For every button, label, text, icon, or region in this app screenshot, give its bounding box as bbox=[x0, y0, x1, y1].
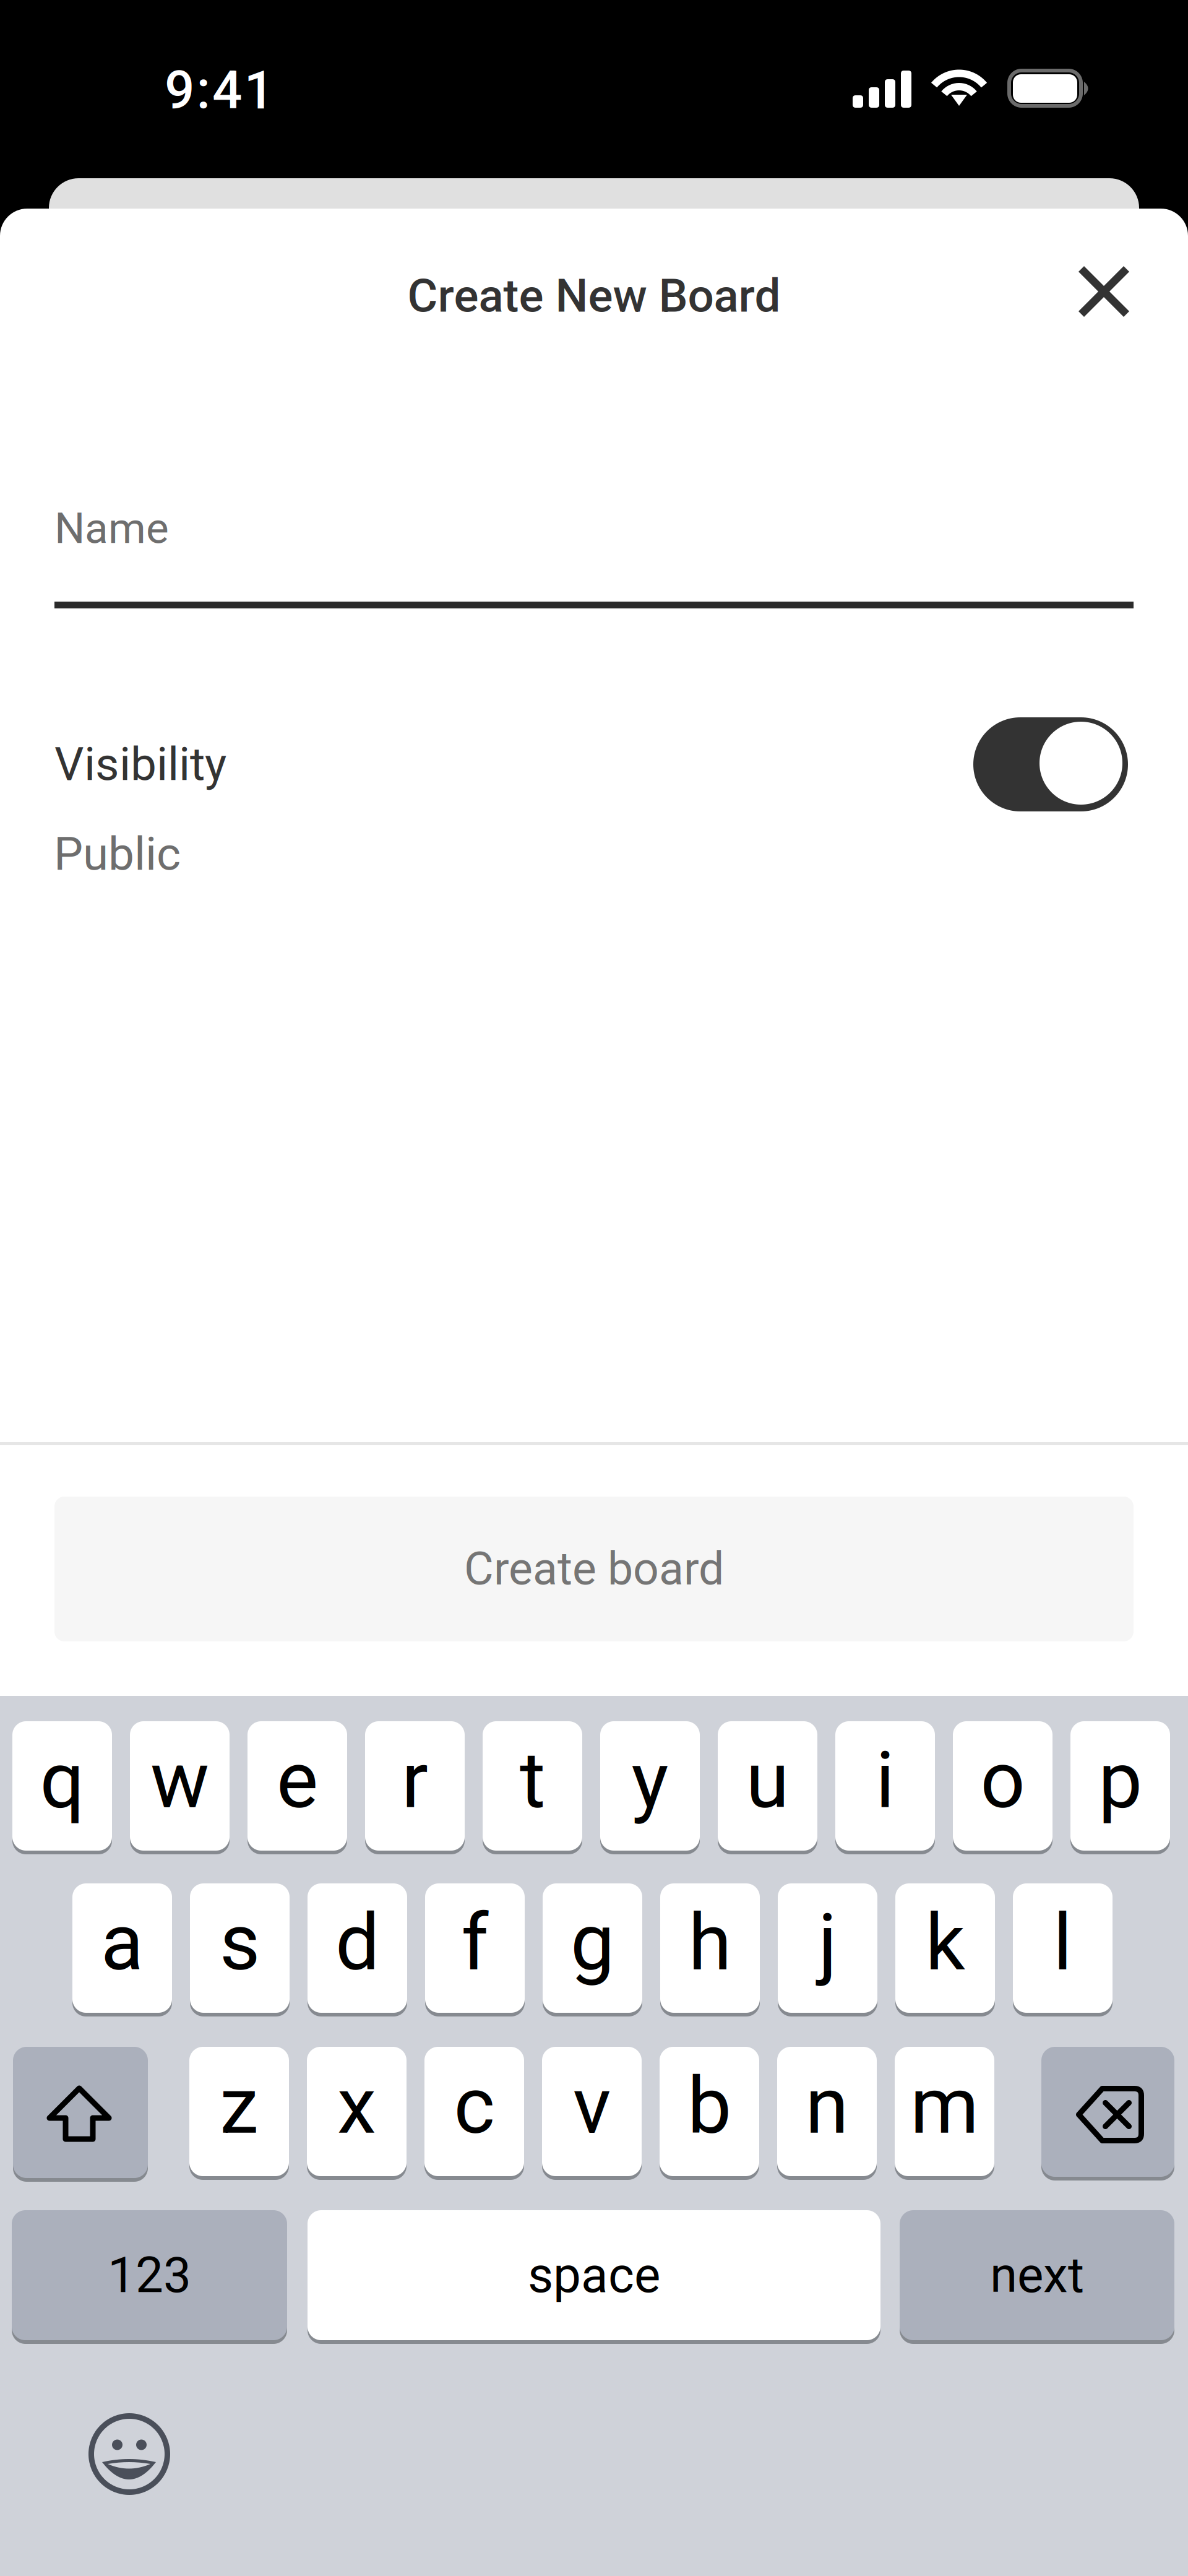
staticText: v bbox=[573, 2060, 611, 2152]
staticText: m bbox=[910, 2060, 979, 2152]
staticText: n bbox=[805, 2060, 849, 2152]
button[interactable]: u bbox=[718, 1721, 817, 1854]
button[interactable]: x bbox=[307, 2047, 407, 2180]
button[interactable]: Emoji bbox=[88, 2413, 170, 2495]
staticText: a bbox=[101, 1897, 144, 1988]
button[interactable]: 123 bbox=[12, 2210, 287, 2344]
button[interactable]: w bbox=[130, 1721, 230, 1854]
staticText: f bbox=[461, 1897, 489, 1988]
staticText: Create New Board bbox=[407, 269, 781, 323]
button[interactable]: h bbox=[660, 1883, 760, 2016]
button[interactable]: m bbox=[895, 2047, 994, 2180]
button[interactable]: i bbox=[835, 1721, 935, 1854]
button[interactable]: e bbox=[247, 1721, 347, 1854]
button[interactable]: a bbox=[72, 1883, 172, 2016]
button[interactable]: r bbox=[365, 1721, 465, 1854]
button[interactable]: Delete bbox=[1041, 2047, 1174, 2181]
staticText: s bbox=[220, 1897, 260, 1988]
staticText: h bbox=[688, 1897, 732, 1988]
button[interactable]: c bbox=[424, 2047, 524, 2180]
button[interactable]: k bbox=[895, 1883, 995, 2016]
staticText: 123 bbox=[108, 2246, 191, 2304]
staticText: i bbox=[876, 1734, 895, 1826]
staticText: Visibility bbox=[54, 737, 226, 791]
staticText: x bbox=[337, 2060, 376, 2152]
staticText: g bbox=[570, 1897, 614, 1988]
staticText: r bbox=[402, 1734, 428, 1826]
staticText: space bbox=[528, 2246, 660, 2304]
staticText: j bbox=[818, 1897, 837, 1988]
button[interactable]: y bbox=[600, 1721, 700, 1854]
staticText: d bbox=[335, 1897, 379, 1988]
staticText: c bbox=[454, 2060, 495, 2152]
button[interactable]: f bbox=[425, 1883, 525, 2016]
button[interactable]: n bbox=[777, 2047, 877, 2180]
staticText: u bbox=[746, 1734, 789, 1826]
staticText: l bbox=[1053, 1897, 1072, 1988]
button[interactable]: l bbox=[1013, 1883, 1113, 2016]
staticText: t bbox=[520, 1734, 545, 1826]
button[interactable]: t bbox=[483, 1721, 582, 1854]
button[interactable]: g bbox=[543, 1883, 642, 2016]
button[interactable]: Create board bbox=[54, 1497, 1134, 1641]
staticText: k bbox=[925, 1897, 965, 1988]
staticText: b bbox=[687, 2060, 731, 2152]
button[interactable]: q bbox=[12, 1721, 112, 1854]
button[interactable]: Shift bbox=[13, 2047, 148, 2182]
button[interactable]: o bbox=[953, 1721, 1052, 1854]
button[interactable]: space bbox=[308, 2210, 880, 2344]
staticText: o bbox=[980, 1734, 1025, 1826]
staticText: Create board bbox=[464, 1542, 724, 1596]
staticText: 9:41 bbox=[165, 59, 274, 121]
staticText: next bbox=[990, 2246, 1084, 2304]
button[interactable]: b bbox=[660, 2047, 759, 2180]
button[interactable]: v bbox=[542, 2047, 642, 2180]
button[interactable]: next bbox=[900, 2210, 1174, 2344]
button[interactable]: Close bbox=[1057, 245, 1150, 338]
staticText: Name bbox=[54, 503, 169, 553]
staticText: q bbox=[40, 1734, 84, 1826]
staticText: y bbox=[631, 1734, 669, 1826]
button[interactable]: z bbox=[189, 2047, 289, 2180]
button[interactable]: j bbox=[778, 1883, 877, 2016]
staticText: z bbox=[220, 2060, 259, 2152]
staticText: Public bbox=[54, 827, 181, 881]
button[interactable]: s bbox=[190, 1883, 290, 2016]
button[interactable]: d bbox=[308, 1883, 407, 2016]
button[interactable]: p bbox=[1070, 1721, 1170, 1854]
staticText: w bbox=[150, 1734, 209, 1826]
staticText: p bbox=[1098, 1734, 1142, 1826]
staticText: e bbox=[277, 1734, 318, 1826]
